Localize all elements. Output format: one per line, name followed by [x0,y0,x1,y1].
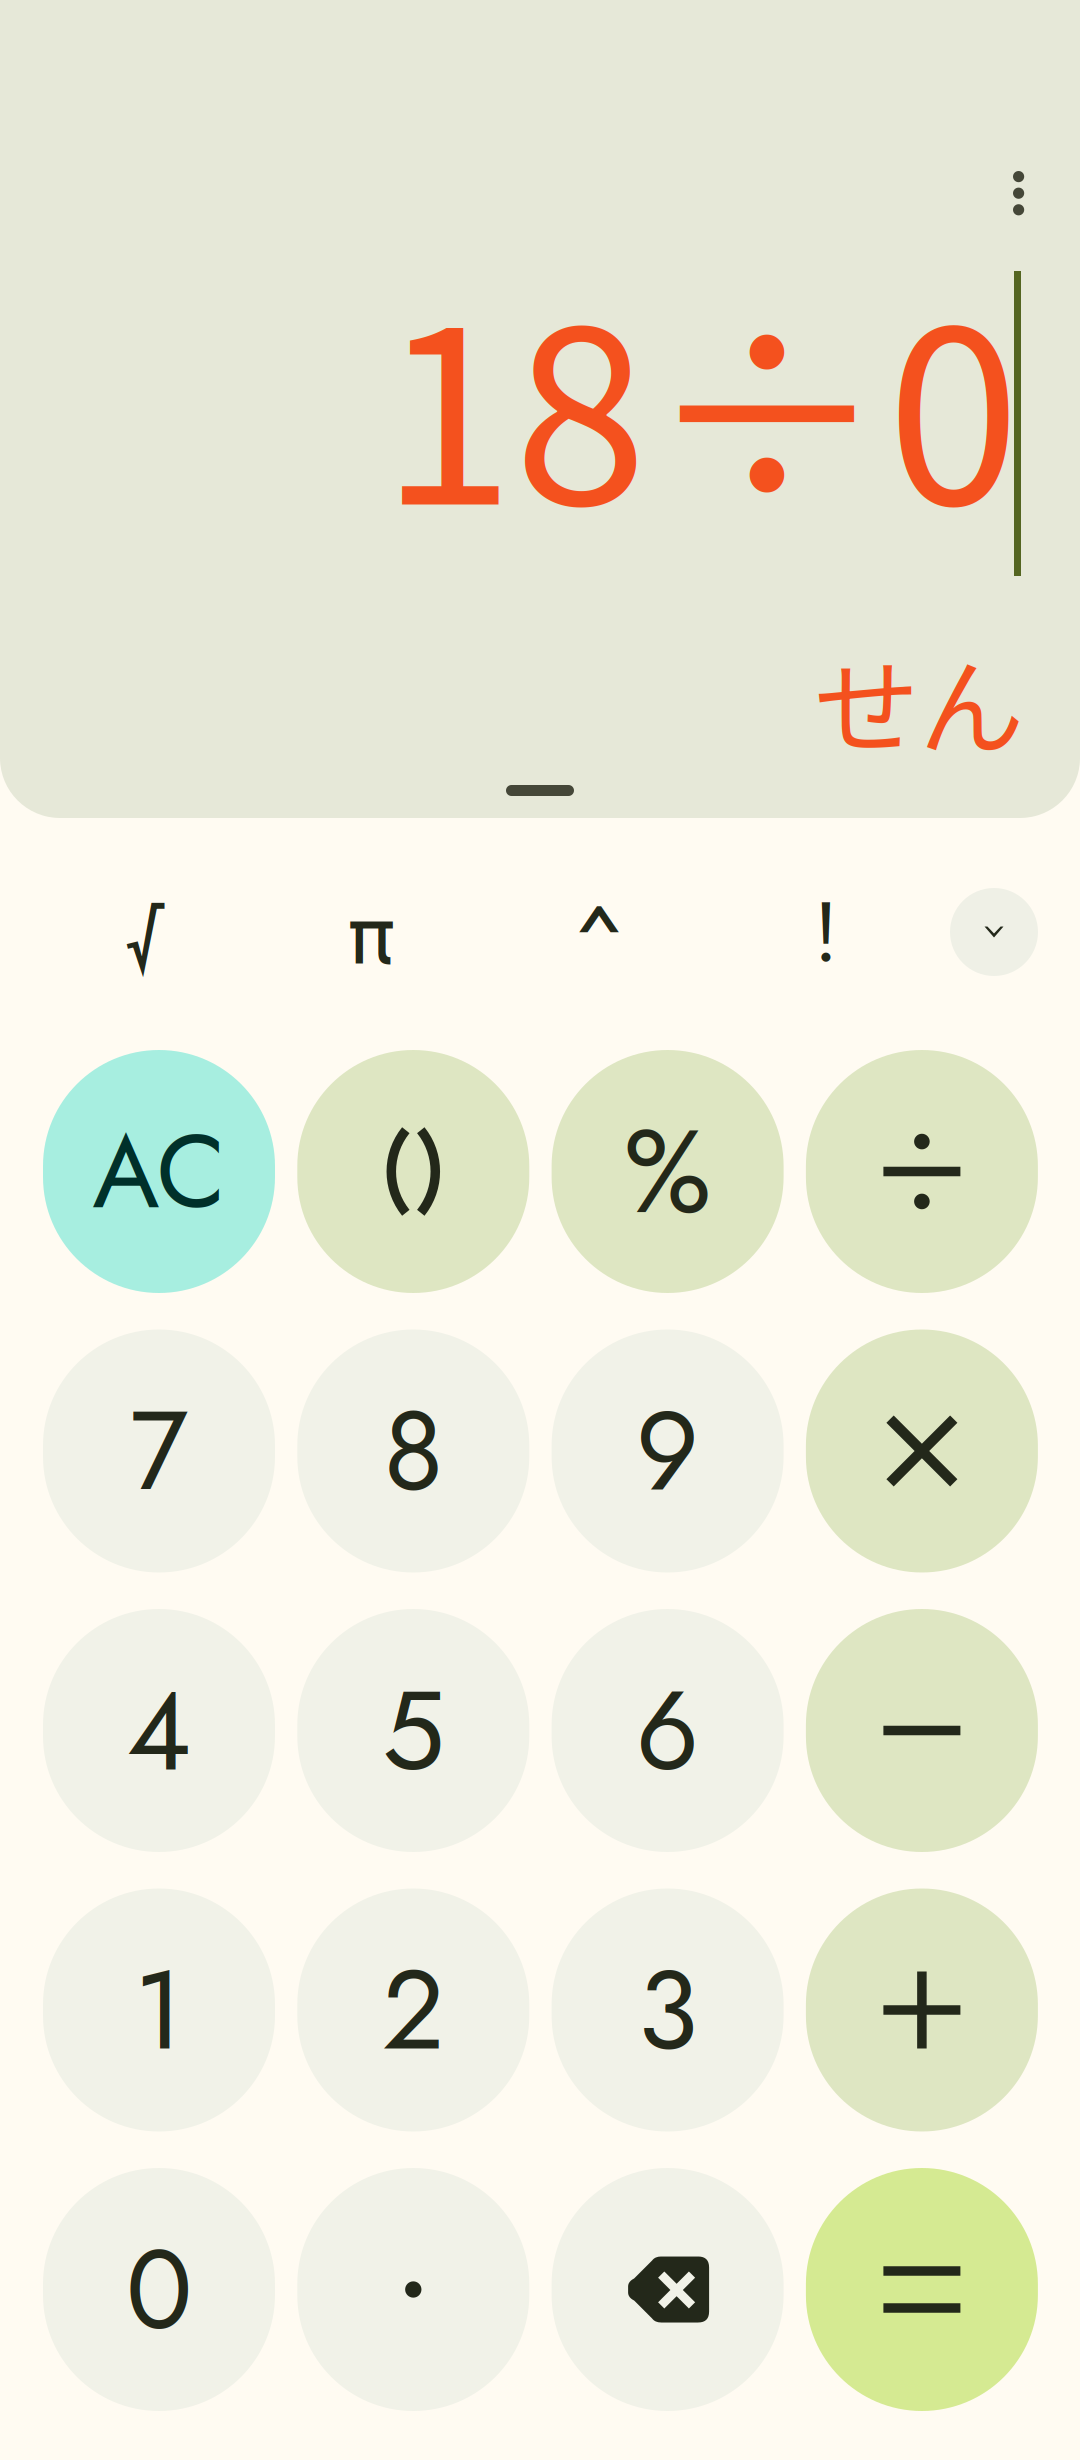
staticText: 4 [126,1650,191,1810]
staticText: AC [92,1098,225,1245]
staticText: 8 [383,1371,443,1531]
button[interactable]: 3 [552,1888,784,2131]
button[interactable]: % [552,1050,784,1293]
button[interactable]: 4 [43,1609,275,1852]
staticText: せん [814,624,1024,776]
button[interactable]: ! [756,880,896,984]
button[interactable]: More functions [950,888,1038,976]
staticText: 5 [382,1650,444,1810]
staticText: 6 [636,1650,700,1810]
staticText: π [347,866,396,997]
button[interactable]: Backspace [552,2168,784,2411]
button[interactable]: 8 [297,1329,529,1572]
staticText: 7 [130,1371,188,1531]
button[interactable]: π [302,880,442,984]
button[interactable]: More options [969,143,1069,243]
staticText: 0 [126,2209,192,2369]
button[interactable]: ^ [529,880,669,984]
button[interactable]: √ [78,880,218,984]
button[interactable]: Parentheses [297,1050,529,1293]
button[interactable]: Decimal point [297,2168,529,2411]
staticText: 3 [638,1930,698,2090]
button[interactable]: Multiply [806,1329,1038,1572]
button[interactable]: 2 [297,1888,529,2131]
button[interactable]: 1 [43,1888,275,2131]
staticText: √ [123,872,173,992]
staticText: % [624,1087,712,1256]
button[interactable]: 7 [43,1329,275,1572]
button[interactable]: 0 [43,2168,275,2411]
staticText: 9 [636,1371,700,1531]
button[interactable]: Divide [806,1050,1038,1293]
staticText: ^ [572,869,625,1019]
button[interactable]: 5 [297,1609,529,1852]
button[interactable]: AC [43,1050,275,1293]
staticText: 2 [382,1930,445,2090]
button[interactable]: Minus [806,1609,1038,1852]
staticText: 1 [134,1930,184,2090]
button[interactable]: 9 [552,1329,784,1572]
button[interactable]: Equals [806,2168,1038,2411]
staticText: ! [813,872,838,992]
button[interactable]: Plus [806,1888,1038,2131]
staticText: 18÷0 [381,226,1020,573]
button[interactable]: 6 [552,1609,784,1852]
